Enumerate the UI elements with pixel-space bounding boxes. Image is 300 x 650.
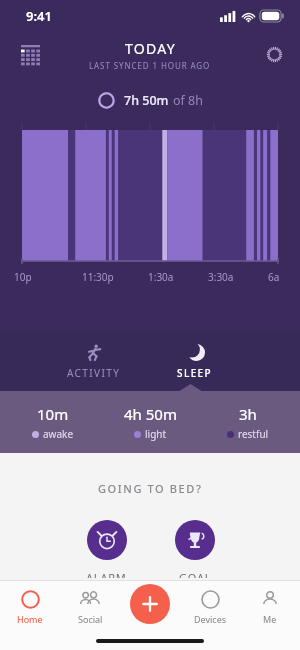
button[interactable]: Sync — [256, 36, 292, 72]
staticText: of 8h — [173, 92, 203, 109]
staticText: Home — [17, 613, 43, 625]
staticText: Me — [263, 613, 277, 625]
button[interactable]: Add — [130, 584, 170, 624]
button[interactable]: GOAL — [165, 518, 225, 580]
staticText: 3:30a — [208, 270, 234, 284]
staticText: awake — [43, 427, 74, 441]
button[interactable]: 4h 50m — [102, 404, 199, 441]
staticText: restful — [238, 427, 269, 441]
button[interactable]: ACTIVITY — [55, 340, 133, 384]
staticText: Devices — [194, 613, 227, 625]
staticText: 1:30a — [148, 270, 174, 284]
staticText: light — [145, 427, 167, 441]
button[interactable]: Me — [240, 586, 300, 627]
staticText: 9:41 — [26, 7, 52, 25]
staticText: SLEEP — [177, 366, 213, 380]
staticText: TODAY — [125, 39, 176, 58]
staticText: 10m — [37, 404, 69, 424]
button[interactable]: Home — [0, 586, 60, 627]
staticText: Social — [78, 613, 103, 625]
staticText: GOAL — [179, 570, 212, 578]
staticText: 3h — [239, 404, 257, 424]
button[interactable]: 3h — [199, 404, 296, 441]
staticText: ALARM — [86, 570, 127, 578]
staticText: 7h 50m — [124, 92, 169, 109]
staticText: 10p — [14, 270, 48, 284]
button[interactable]: ALARM — [76, 518, 137, 580]
button[interactable]: 10m — [4, 404, 102, 441]
staticText: ACTIVITY — [67, 366, 121, 380]
button[interactable]: Social — [60, 586, 120, 627]
staticText: 4h 50m — [124, 404, 177, 424]
button[interactable]: Calendar — [10, 34, 50, 74]
button[interactable]: SLEEP — [165, 340, 225, 384]
staticText: 11:30p — [82, 270, 114, 284]
button[interactable]: Devices — [180, 586, 240, 627]
staticText: 6a — [268, 270, 286, 284]
staticText: LAST SYNCED 1 HOUR AGO — [89, 60, 211, 71]
staticText: GOING TO BED? — [98, 481, 203, 496]
